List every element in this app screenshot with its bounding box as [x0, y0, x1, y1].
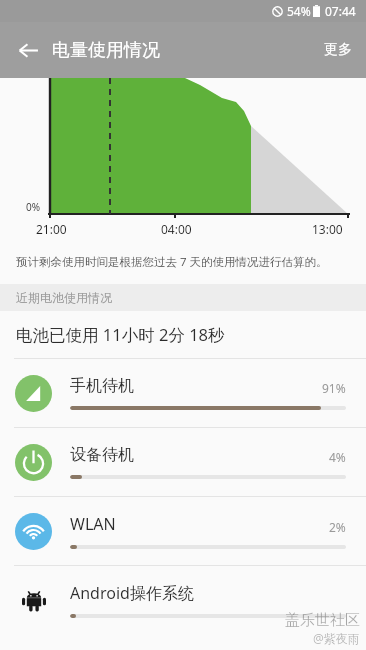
staticText: 07:44: [325, 3, 356, 19]
staticText: @紫夜雨: [313, 630, 360, 646]
button[interactable]: 手机待机: [0, 359, 366, 427]
staticText: 更多: [324, 41, 352, 59]
staticText: 21:00: [36, 221, 67, 237]
button[interactable]: Android操作系统: [0, 566, 366, 634]
staticText: 0%: [26, 200, 41, 214]
button[interactable]: 更多: [310, 29, 366, 71]
staticText: 91%: [322, 380, 346, 396]
staticText: 电池已使用 11小时 2分 18秒: [16, 323, 225, 346]
staticText: 手机待机: [70, 376, 134, 396]
staticText: 04:00: [161, 221, 192, 237]
staticText: WLAN: [70, 513, 116, 535]
staticText: 盖乐世社区: [285, 611, 360, 630]
staticText: 电量使用情况: [52, 39, 160, 62]
button[interactable]: 返回: [8, 30, 48, 70]
button[interactable]: WLAN: [0, 497, 366, 565]
staticText: Android操作系统: [70, 582, 194, 604]
staticText: 13:00: [312, 221, 343, 237]
staticText: 预计剩余使用时间是根据您过去 7 天的使用情况进行估算的。: [16, 254, 328, 270]
staticText: 近期电池使用情况: [16, 290, 112, 305]
staticText: 设备待机: [70, 445, 134, 465]
staticText: 2%: [329, 519, 346, 535]
staticText: 54%: [287, 3, 311, 19]
button[interactable]: 设备待机: [0, 428, 366, 496]
staticText: 4%: [329, 449, 346, 465]
